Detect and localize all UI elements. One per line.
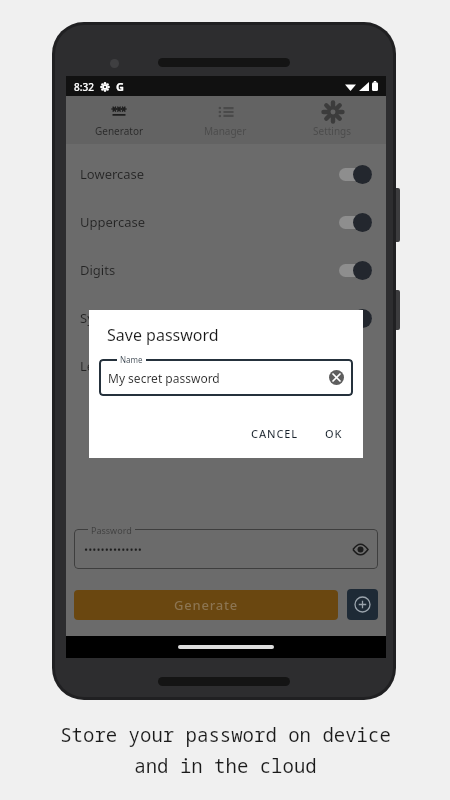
- button[interactable]: Length: [66, 342, 386, 390]
- button[interactable]: Lowercase: [66, 150, 386, 198]
- staticText: Length: [80, 357, 123, 375]
- button[interactable]: Digits: [66, 246, 386, 294]
- staticText: Save password: [107, 324, 219, 346]
- staticText: Digits: [80, 261, 116, 279]
- staticText: CANCEL: [251, 426, 299, 441]
- staticText: Symbols: [80, 309, 132, 327]
- staticText: OK: [325, 426, 343, 441]
- other: Show password: [353, 542, 368, 557]
- button[interactable]: Add password: [347, 589, 378, 620]
- button[interactable]: Uppercase: [66, 198, 386, 246]
- button[interactable]: Generator: [66, 96, 172, 144]
- staticText: 8:32: [74, 80, 94, 94]
- staticText: Settings: [313, 124, 352, 138]
- staticText: and in the cloud: [134, 753, 317, 779]
- staticText: Uppercase: [80, 213, 146, 231]
- staticText: G: [116, 79, 124, 94]
- staticText: ••••••••••••••: [84, 542, 142, 557]
- button[interactable]: Settings: [279, 96, 386, 144]
- button[interactable]: Clear: [329, 370, 344, 385]
- staticText: My secret password: [108, 370, 220, 386]
- staticText: Name: [120, 354, 143, 365]
- button[interactable]: My secret password: [99, 359, 353, 396]
- button[interactable]: Symbols: [66, 294, 386, 342]
- staticText: Generate: [174, 596, 239, 614]
- staticText: Lowercase: [80, 165, 145, 183]
- staticText: Password: [91, 524, 132, 536]
- button[interactable]: OK: [319, 421, 349, 446]
- staticText: Manager: [204, 124, 247, 138]
- button[interactable]: ••••••••••••••: [74, 529, 378, 569]
- button[interactable]: Manager: [172, 96, 279, 144]
- staticText: Generator: [95, 124, 144, 138]
- button[interactable]: Generate: [74, 590, 338, 620]
- button[interactable]: CANCEL: [245, 421, 305, 446]
- staticText: Store your password on device: [60, 722, 391, 748]
